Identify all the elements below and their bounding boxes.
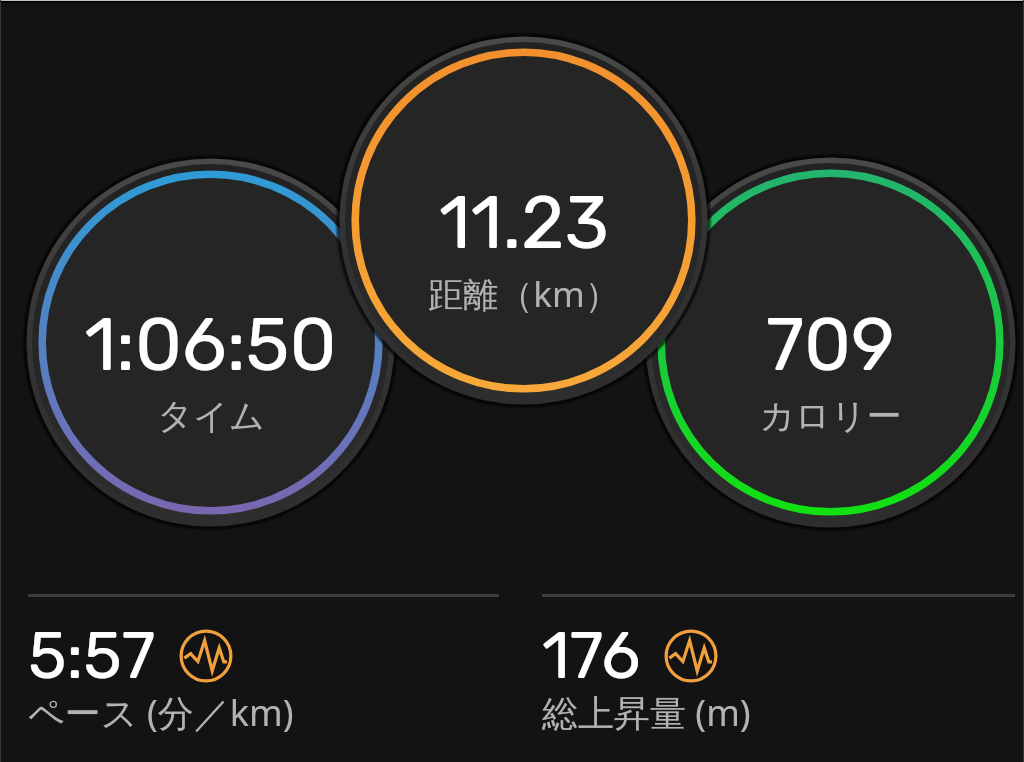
staticText: 11.23 [439, 179, 609, 267]
staticText: ペース (分／km) [28, 688, 294, 737]
button[interactable]: 1:06:50 [16, 148, 405, 537]
staticText: 709 [766, 301, 895, 389]
staticText: カロリー [759, 394, 902, 438]
other: Heart rate [664, 629, 718, 683]
staticText: 1:06:50 [84, 301, 337, 389]
staticText: 176 [542, 617, 641, 694]
staticText: タイム [157, 394, 265, 438]
staticText: 総上昇量 (m) [542, 688, 751, 737]
staticText: 5:57 [28, 617, 156, 694]
button[interactable]: 5:57 [0, 594, 512, 762]
button[interactable]: 709 [635, 147, 1024, 538]
other: Heart rate [179, 629, 233, 683]
button[interactable]: 11.23 [329, 26, 718, 415]
staticText: 距離（km） [428, 270, 620, 318]
button[interactable]: 176 [512, 594, 1024, 762]
